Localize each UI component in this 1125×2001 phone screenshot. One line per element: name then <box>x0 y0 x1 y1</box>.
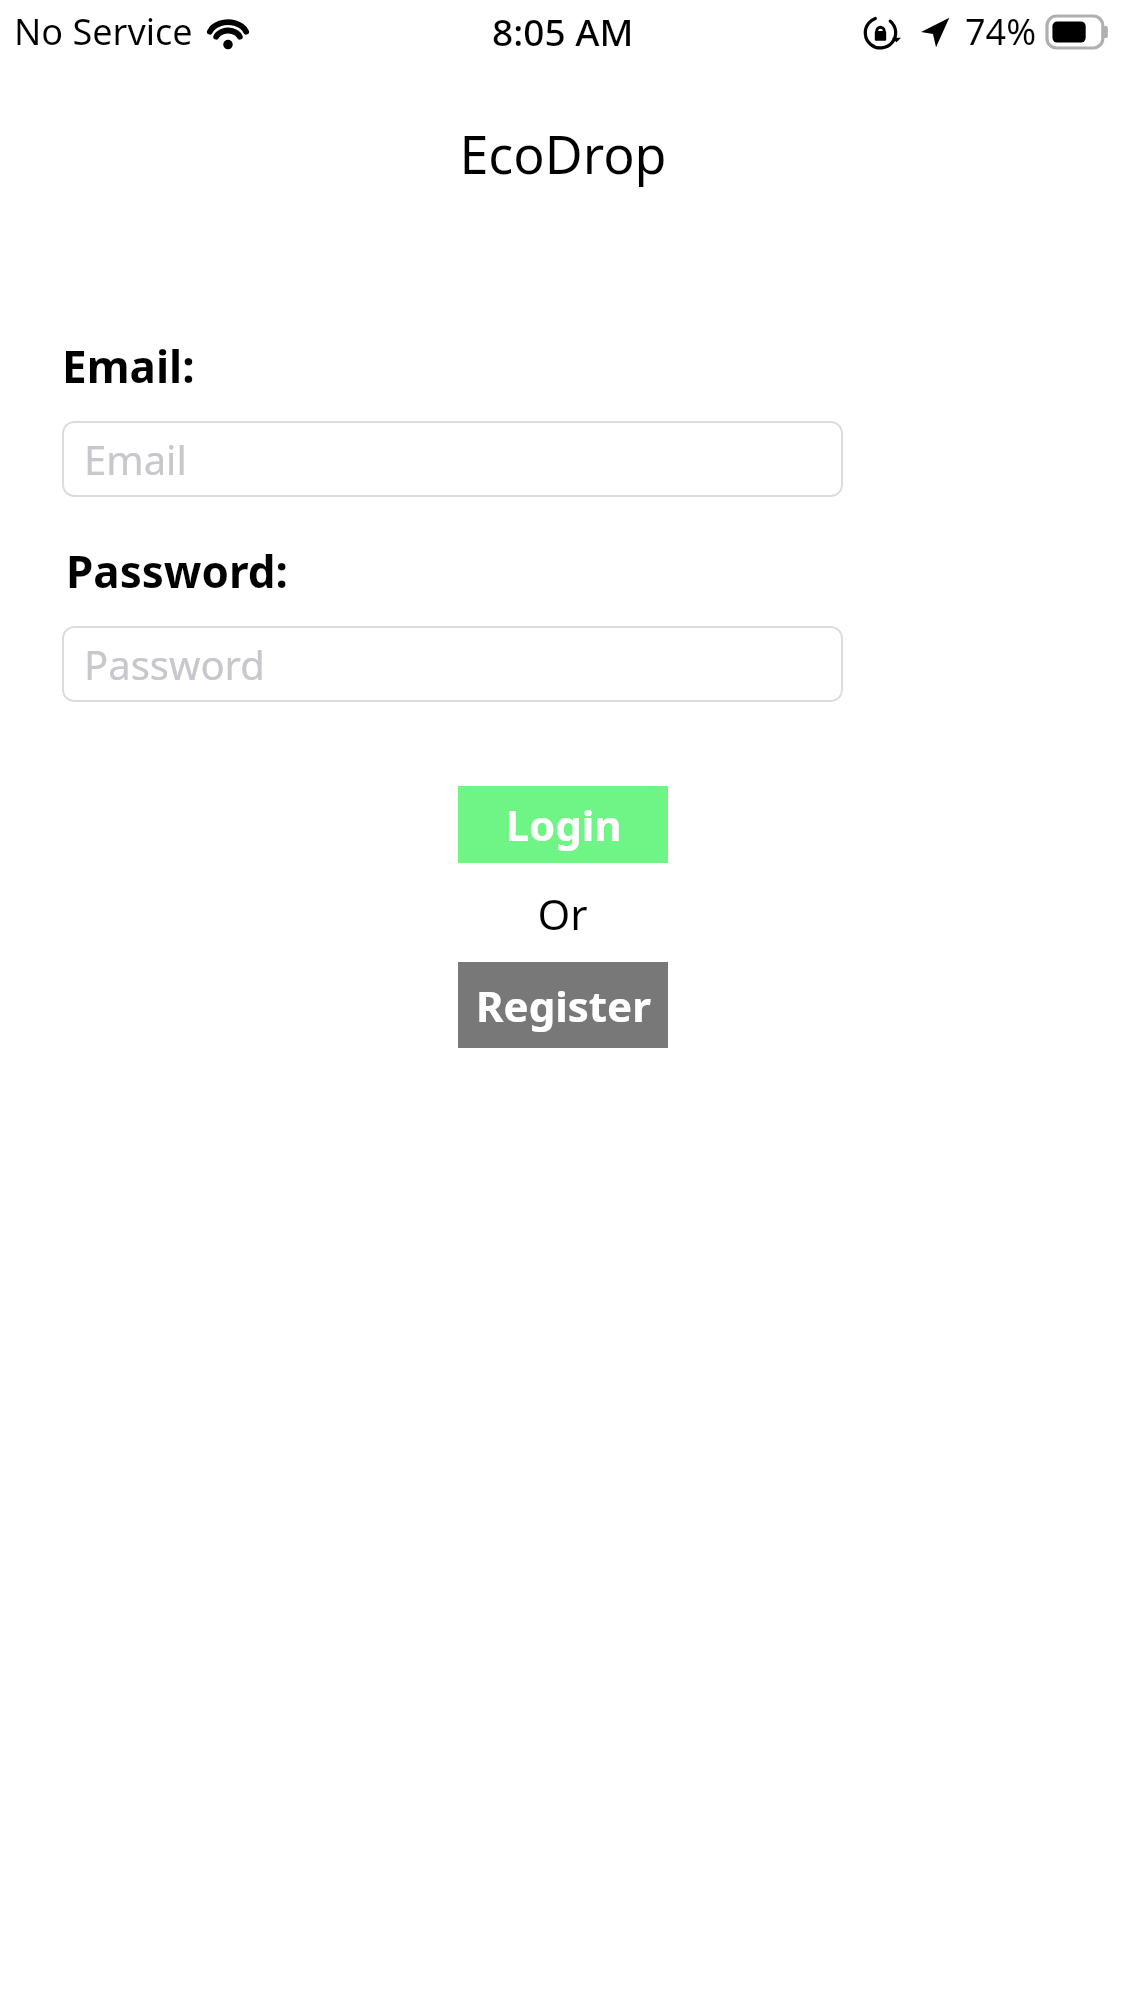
button[interactable]: Login <box>458 786 668 863</box>
staticText: Register <box>476 977 651 1034</box>
staticText: No Service <box>14 7 193 56</box>
button[interactable]: Register <box>458 962 668 1048</box>
staticText: EcoDrop <box>459 118 667 189</box>
other: Battery 74 percent <box>1047 16 1109 48</box>
button[interactable]: Password <box>62 626 843 702</box>
other: Rotation lock <box>863 13 901 51</box>
staticText: 8:05 AM <box>492 6 634 56</box>
other: Location <box>917 15 951 49</box>
staticText: Login <box>505 796 622 853</box>
staticText: Email <box>84 432 187 486</box>
staticText: Email: <box>62 336 195 396</box>
staticText: Or <box>537 885 588 942</box>
staticText: Password <box>84 637 265 691</box>
button[interactable]: Email <box>62 421 843 497</box>
staticText: 74% <box>965 7 1037 56</box>
staticText: Password: <box>66 541 288 601</box>
